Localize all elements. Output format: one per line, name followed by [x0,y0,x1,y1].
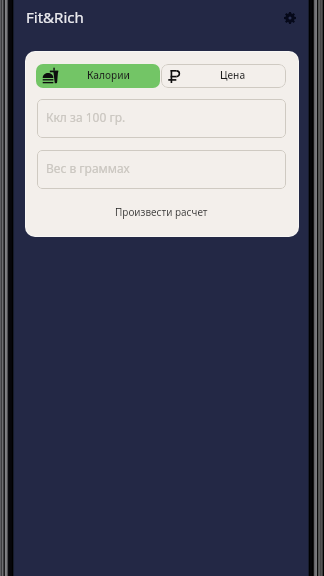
staticText: Ккл за 100 гр. [46,109,126,125]
staticText: Цена [220,68,246,82]
staticText: Калории [87,68,130,82]
staticText: Вес в граммах [46,160,130,176]
button[interactable]: Произвести расчет [36,199,288,227]
button[interactable]: Калории [36,64,160,88]
button[interactable]: Вес в граммах [37,150,286,189]
button[interactable]: Ккл за 100 гр. [37,99,286,138]
button[interactable]: Цена [161,64,286,88]
staticText: Fit&Rich [26,7,84,27]
staticText: Произвести расчет [115,205,208,219]
button[interactable]: Settings [280,8,300,28]
